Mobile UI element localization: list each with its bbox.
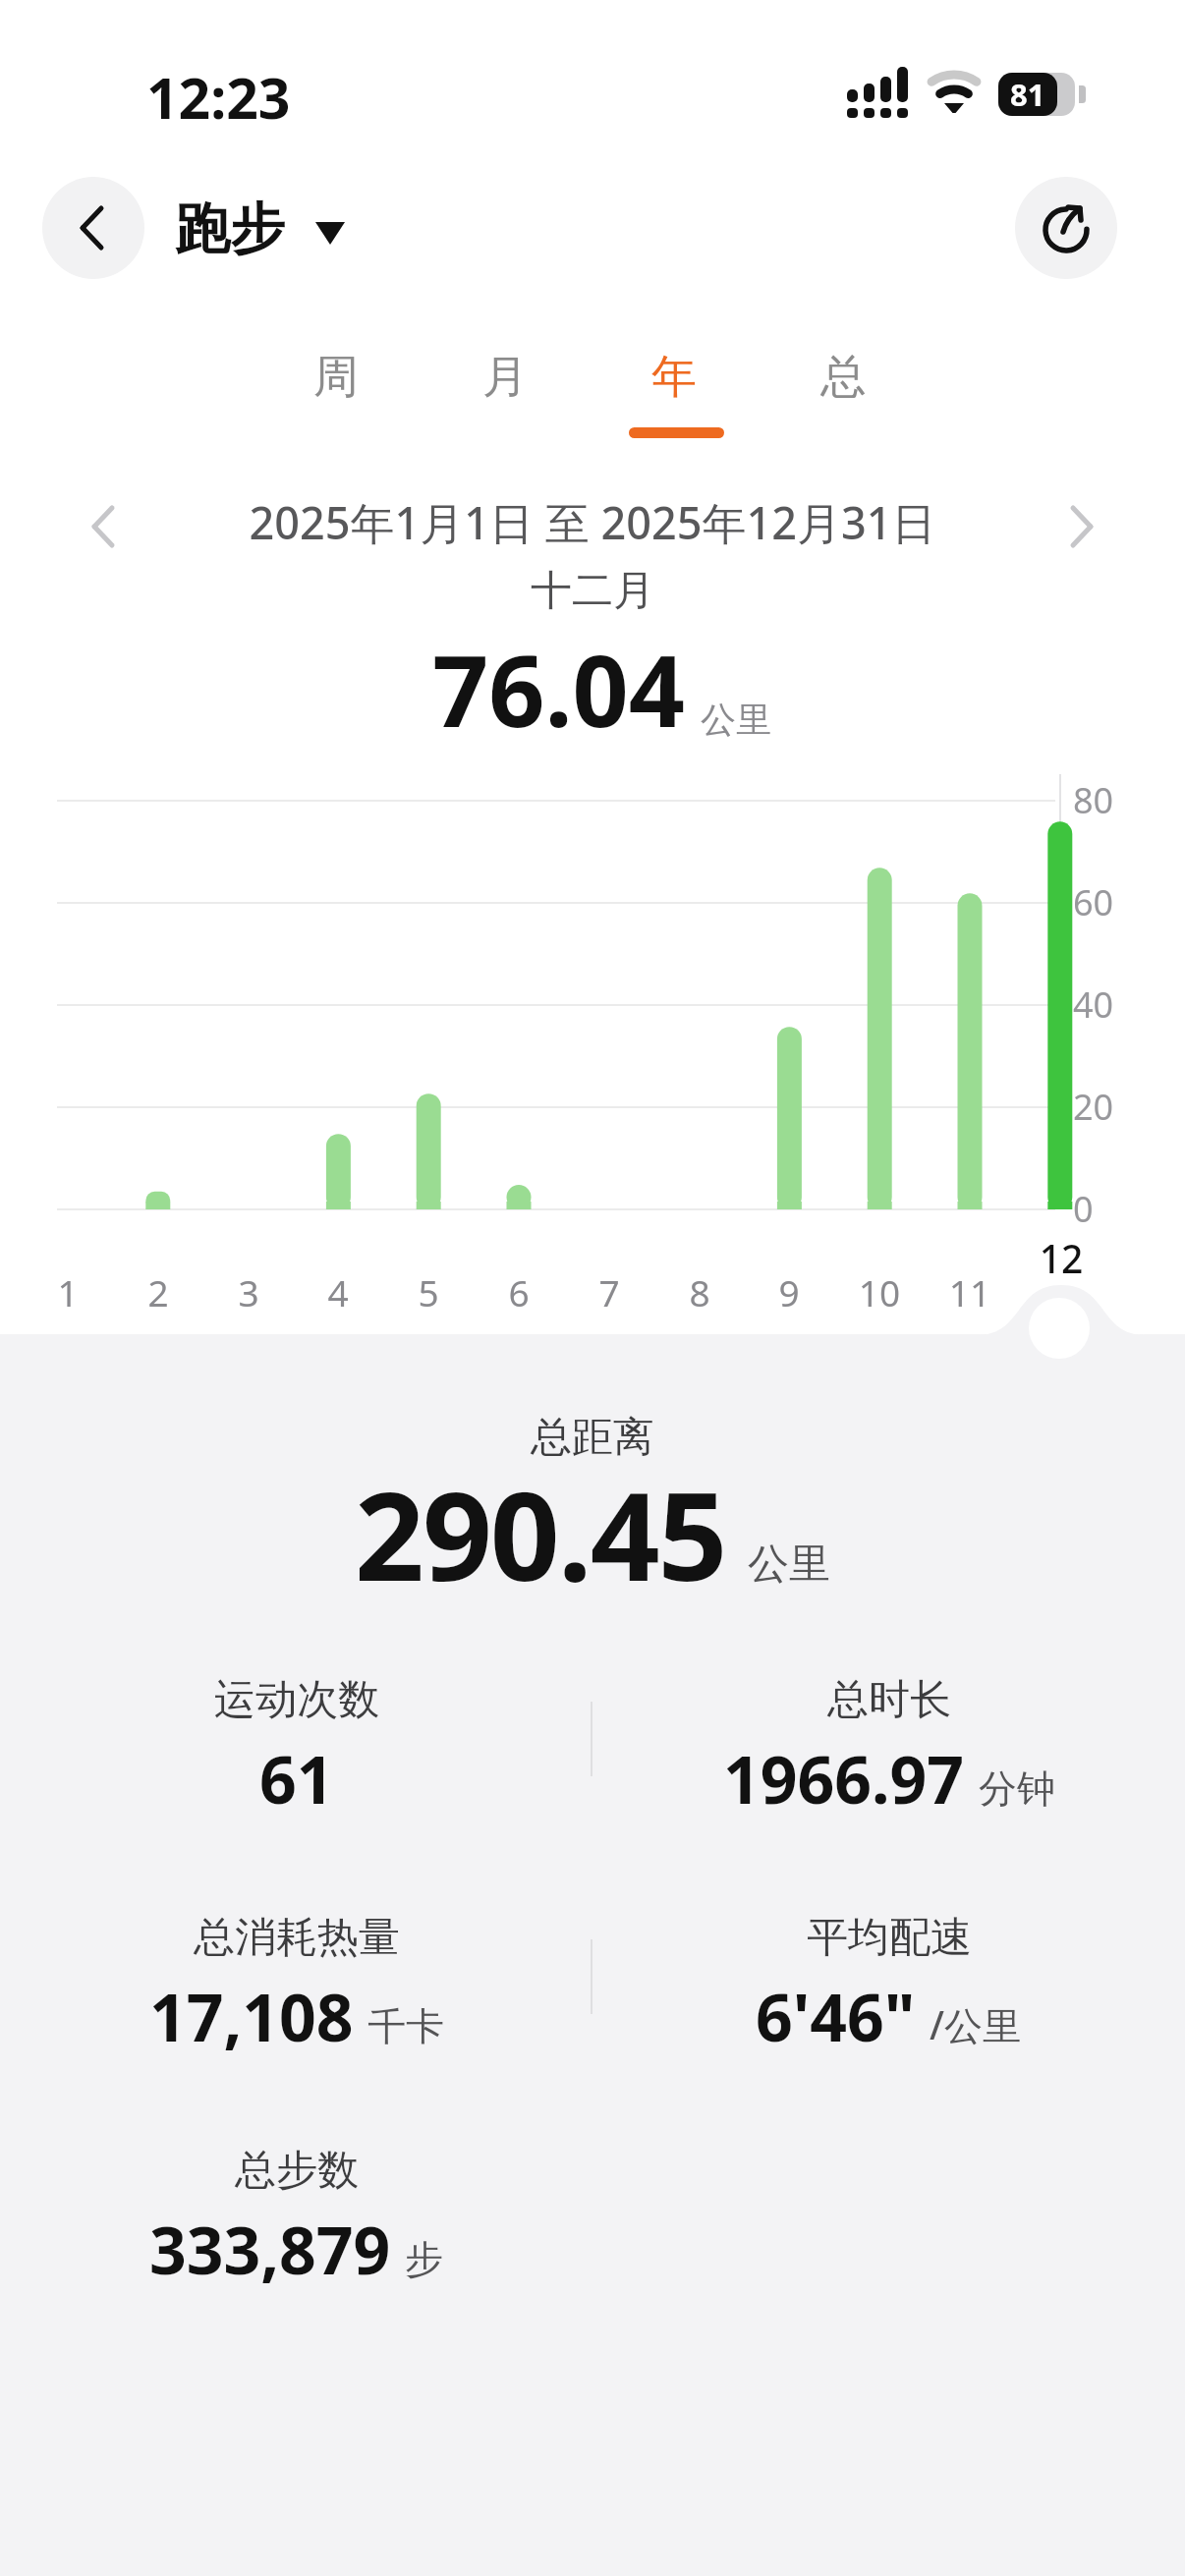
staticText: 4 [299,1267,377,1316]
staticText: 20 [1073,1083,1114,1131]
staticText: 81 [1010,74,1045,115]
staticText: 公里 [701,698,771,742]
staticText: 2025年1月1日 至 2025年12月31日 [0,492,1185,552]
button[interactable] [1015,177,1117,279]
staticText: 运动次数 [214,1674,379,1726]
staticText: 跑步 [175,195,285,264]
staticText: 290.45 [355,1450,726,1616]
staticText: 76.04 [432,622,685,756]
staticText: 1966.97 [723,1734,965,1822]
staticText: 3 [209,1267,288,1316]
staticText: 10 [840,1267,919,1316]
button[interactable]: 总步数 [0,2145,592,2293]
button[interactable] [1069,506,1095,549]
staticText: 总 [820,349,866,406]
staticText: 分钟 [979,1764,1055,1813]
staticText: 7 [570,1267,649,1316]
staticText: 总距离 [0,1412,1185,1464]
staticText: 6'46" [756,1972,916,2060]
staticText: /公里 [930,1998,1022,2050]
staticText: 80 [1073,776,1114,824]
staticText: 12:23 [146,59,291,136]
button[interactable] [90,506,116,549]
button[interactable] [42,177,144,279]
staticText: 月 [482,349,528,406]
staticText: 60 [1073,878,1114,926]
staticText: 2 [119,1267,197,1316]
staticText: 40 [1073,980,1114,1029]
staticText: 千卡 [367,2002,444,2050]
staticText: 6 [480,1267,558,1316]
staticText: 总步数 [235,2145,359,2197]
staticText: 8 [660,1267,739,1316]
staticText: 1 [28,1267,107,1316]
staticText: 11 [931,1267,1009,1316]
staticText: 年 [651,349,697,406]
staticText: 0 [1073,1185,1094,1233]
staticText: 周 [313,349,359,406]
button[interactable]: 运动次数 [0,1674,592,1822]
staticText: 333,879 [149,2205,391,2293]
button[interactable]: 年 [590,346,759,409]
staticText: 61 [259,1734,334,1822]
button[interactable]: 跑步 [175,195,362,277]
staticText: 平均配速 [807,1912,972,1964]
staticText: 5 [389,1267,468,1316]
button[interactable]: 平均配速 [592,1912,1185,2060]
staticText: 9 [750,1267,828,1316]
staticText: 步 [405,2235,443,2283]
staticText: 总时长 [827,1674,951,1726]
staticText: 总消耗热量 [194,1912,400,1964]
staticText: 12 [1022,1232,1100,1284]
button[interactable]: 总 [759,346,928,409]
staticText: 17,108 [149,1972,354,2060]
staticText: 十二月 [0,565,1185,617]
button[interactable]: 总时长 [592,1674,1185,1822]
button[interactable]: 总消耗热量 [0,1912,592,2060]
staticText: 公里 [748,1539,830,1591]
button[interactable]: 月 [421,346,590,409]
button[interactable]: 周 [252,346,421,409]
